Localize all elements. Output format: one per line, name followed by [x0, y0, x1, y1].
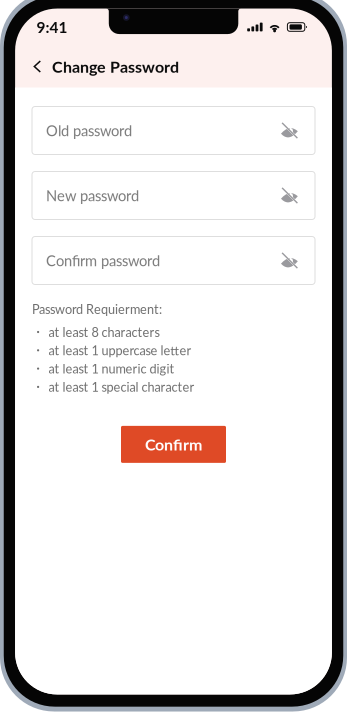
staticText: at least 8 characters [48, 324, 159, 340]
button[interactable]: Old password [32, 106, 315, 154]
staticText: Change Password [52, 57, 179, 76]
button[interactable]: Confirm [121, 426, 226, 463]
staticText: Password Requierment: [32, 301, 162, 317]
staticText: New password [46, 187, 139, 204]
button[interactable]: Back [33, 53, 52, 79]
button[interactable]: New password [32, 171, 315, 219]
button[interactable]: Confirm password [32, 236, 315, 284]
staticText: at least 1 numeric digit [48, 361, 174, 376]
staticText: at least 1 special character [48, 379, 194, 394]
staticText: Confirm password [46, 252, 160, 269]
staticText: Old password [46, 122, 132, 139]
staticText: 9:41 [36, 18, 67, 36]
staticText: Confirm [145, 435, 202, 454]
staticText: at least 1 uppercase letter [48, 343, 191, 358]
